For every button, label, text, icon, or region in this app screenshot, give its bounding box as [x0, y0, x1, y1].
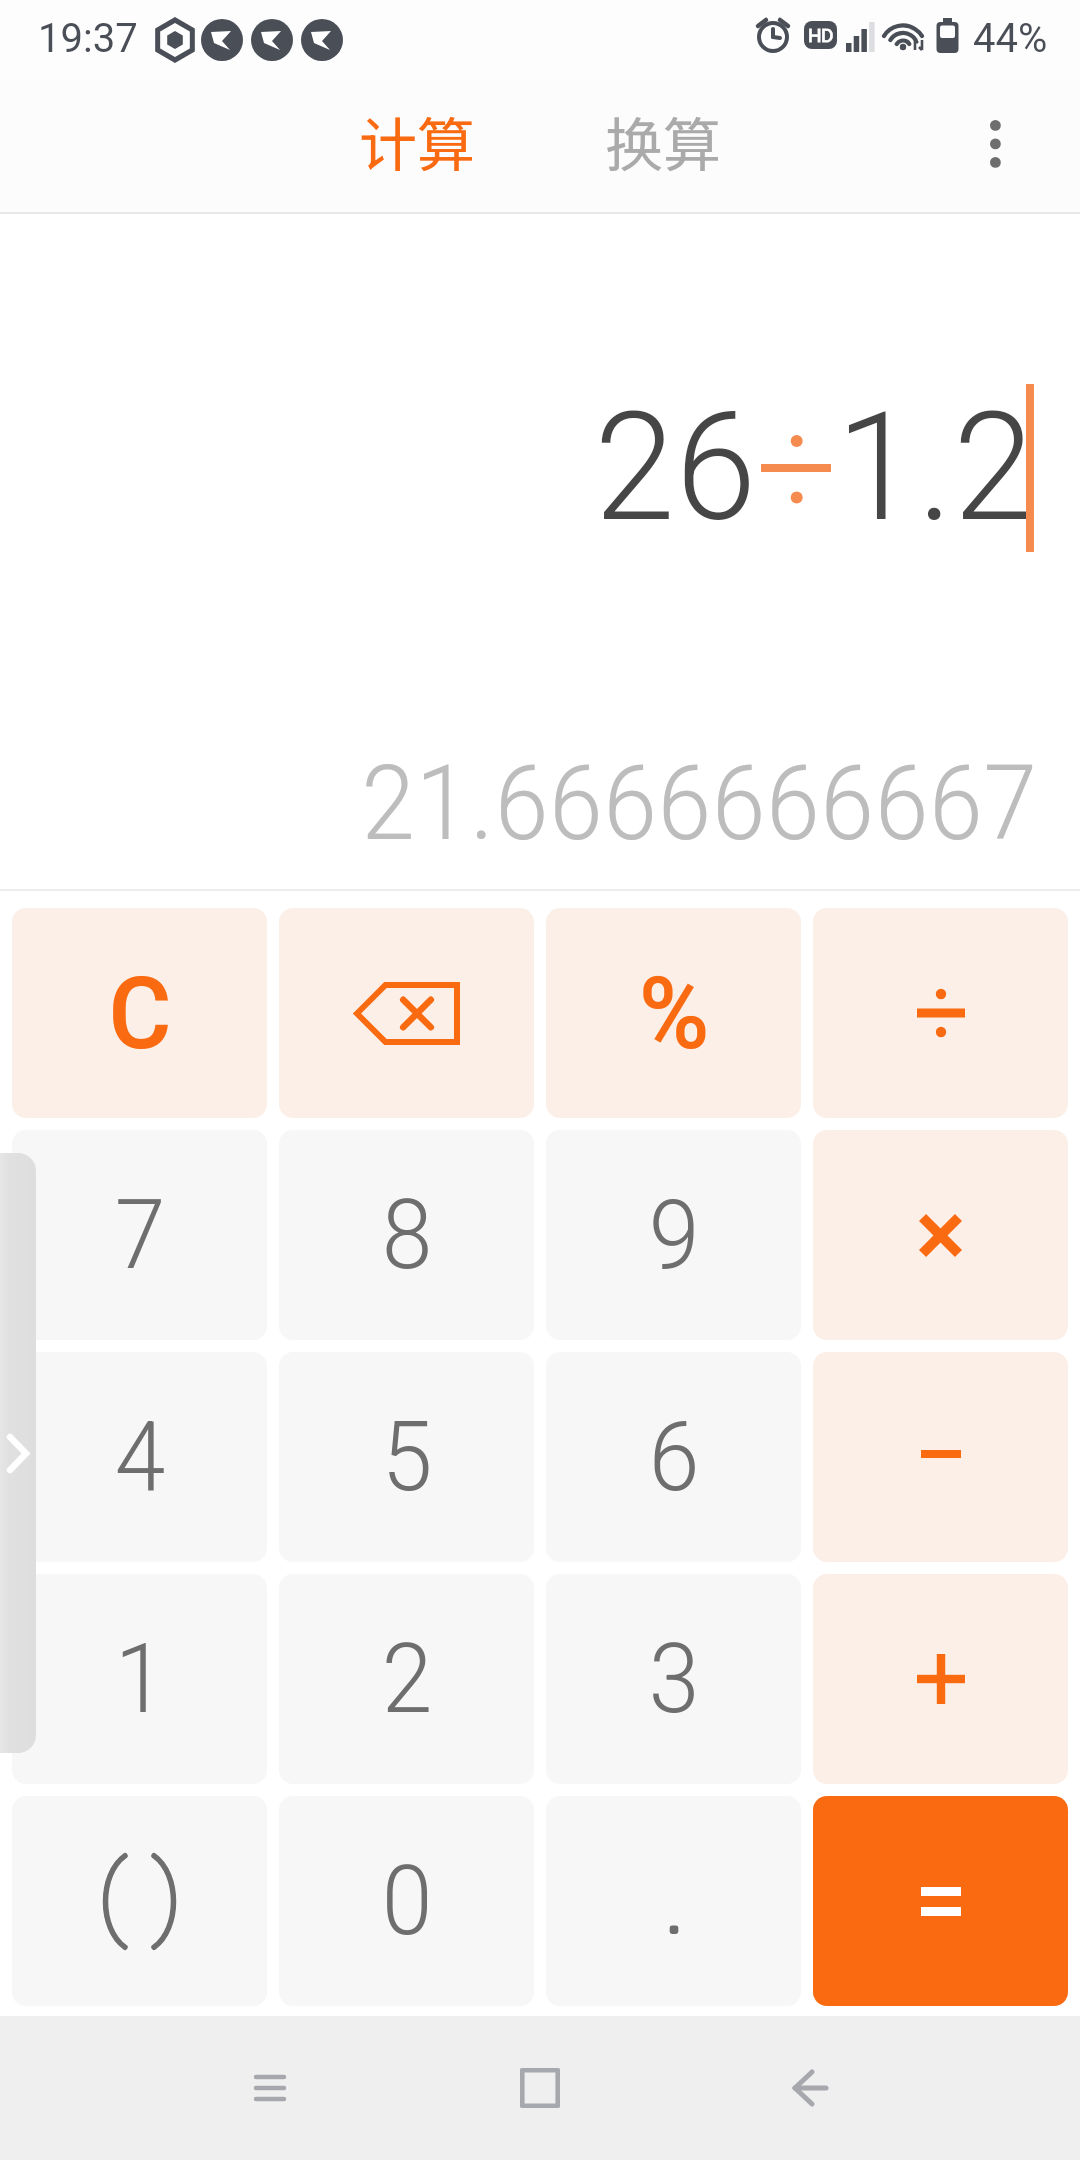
- button[interactable]: 0: [279, 1796, 534, 2006]
- button[interactable]: [12, 1796, 267, 2006]
- button[interactable]: 6: [546, 1352, 801, 1562]
- button[interactable]: Back: [720, 2016, 900, 2160]
- button[interactable]: 换算: [540, 80, 786, 212]
- staticText: %: [638, 955, 710, 1072]
- button[interactable]: [546, 1796, 801, 2006]
- staticText: 0: [381, 1845, 433, 1958]
- staticText: 19:37: [38, 15, 138, 62]
- button[interactable]: [813, 1130, 1068, 1340]
- staticText: 2: [381, 1623, 433, 1736]
- button[interactable]: 计算: [294, 80, 540, 212]
- button[interactable]: 4: [12, 1352, 267, 1562]
- staticText: 26: [594, 380, 757, 556]
- button[interactable]: Backspace: [279, 908, 534, 1118]
- staticText: 7: [114, 1179, 166, 1292]
- staticText: 换算: [605, 99, 722, 183]
- staticText: 5: [381, 1401, 433, 1514]
- button[interactable]: C: [12, 908, 267, 1118]
- button[interactable]: More options: [926, 80, 1066, 212]
- button[interactable]: [813, 1574, 1068, 1784]
- button[interactable]: 8: [279, 1130, 534, 1340]
- staticText: 4: [114, 1401, 166, 1514]
- staticText: 1.2: [836, 380, 1035, 556]
- staticText: 44%: [973, 15, 1048, 62]
- staticText: 6: [648, 1401, 700, 1514]
- button[interactable]: %: [546, 908, 801, 1118]
- button[interactable]: 5: [279, 1352, 534, 1562]
- button[interactable]: 1: [12, 1574, 267, 1784]
- staticText: 1: [114, 1623, 166, 1736]
- button[interactable]: [813, 908, 1068, 1118]
- staticText: 9: [648, 1179, 700, 1292]
- button[interactable]: 7: [12, 1130, 267, 1340]
- staticText: 8: [381, 1179, 433, 1292]
- staticText: 21.6666666667: [361, 743, 1038, 865]
- staticText: HD: [808, 24, 834, 46]
- button[interactable]: Home: [450, 2016, 630, 2160]
- button[interactable]: 9: [546, 1130, 801, 1340]
- staticText: 计算: [359, 99, 476, 183]
- button[interactable]: 3: [546, 1574, 801, 1784]
- button[interactable]: Open history panel: [0, 1153, 36, 1753]
- button[interactable]: 2: [279, 1574, 534, 1784]
- button[interactable]: Recent apps: [180, 2016, 360, 2160]
- staticText: C: [108, 955, 172, 1072]
- button[interactable]: [813, 1352, 1068, 1562]
- staticText: 3: [648, 1623, 700, 1736]
- button[interactable]: Equals: [813, 1796, 1068, 2006]
